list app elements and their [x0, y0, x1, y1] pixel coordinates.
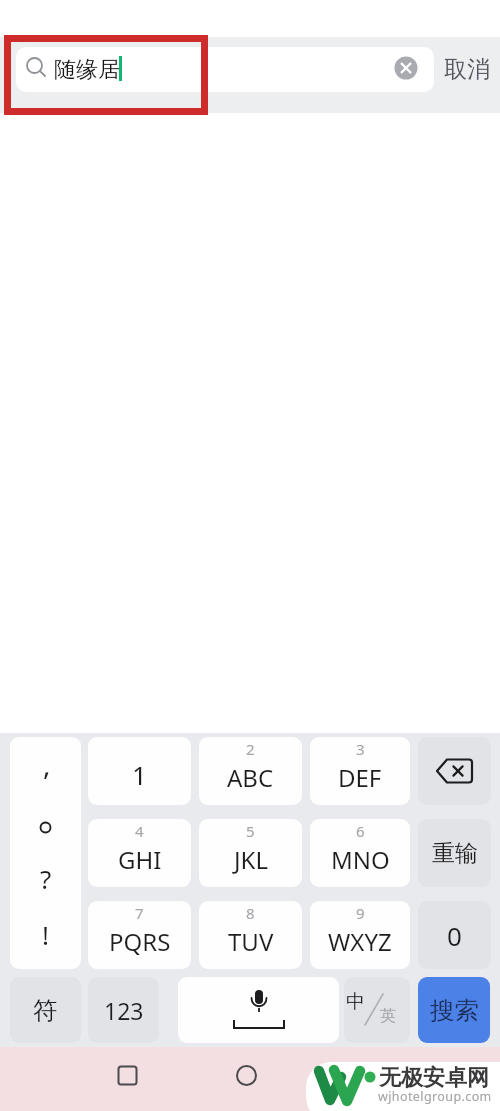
staticText: 搜索: [430, 995, 479, 1026]
staticText: 0: [447, 918, 462, 953]
staticText: MNO: [331, 843, 390, 876]
button[interactable]: [178, 977, 339, 1043]
staticText: TUV: [228, 925, 274, 958]
button[interactable]: [117, 1065, 138, 1086]
staticText: 5: [246, 821, 255, 841]
button[interactable]: 8: [199, 901, 302, 969]
staticText: 9: [356, 903, 365, 923]
staticText: GHI: [118, 843, 162, 876]
button[interactable]: 9: [310, 901, 410, 969]
staticText: ?: [40, 861, 52, 896]
staticText: 无极安卓网: [379, 1064, 489, 1092]
staticText: DEF: [338, 761, 382, 794]
button[interactable]: 重输: [418, 819, 491, 887]
button[interactable]: 1: [88, 737, 191, 805]
button[interactable]: 5: [199, 819, 302, 887]
staticText: 英: [380, 1006, 396, 1026]
button[interactable]: ,: [10, 737, 81, 969]
staticText: 2: [246, 739, 255, 759]
staticText: ,: [43, 745, 51, 783]
staticText: 随缘居: [54, 56, 120, 84]
button[interactable]: 符: [10, 977, 81, 1043]
staticText: 1: [132, 757, 147, 792]
staticText: PQRS: [109, 925, 171, 958]
button[interactable]: 中: [344, 977, 410, 1043]
staticText: 123: [104, 995, 144, 1026]
staticText: 重输: [432, 839, 478, 868]
button[interactable]: 2: [199, 737, 302, 805]
staticText: !: [42, 917, 49, 952]
staticText: 6: [356, 821, 365, 841]
button[interactable]: 搜索: [418, 977, 490, 1043]
button[interactable]: 7: [88, 901, 191, 969]
button[interactable]: 123: [88, 977, 159, 1043]
staticText: WXYZ: [328, 925, 392, 958]
staticText: 符: [33, 995, 58, 1026]
button[interactable]: 6: [310, 819, 410, 887]
button[interactable]: 0: [418, 901, 491, 969]
button[interactable]: [394, 56, 418, 80]
staticText: ABC: [227, 761, 274, 794]
staticText: JKL: [234, 843, 268, 876]
staticText: 8: [246, 903, 255, 923]
button[interactable]: [236, 1065, 257, 1086]
staticText: 3: [356, 739, 365, 759]
button[interactable]: [418, 737, 491, 805]
button[interactable]: [16, 47, 434, 92]
staticText: 4: [135, 821, 144, 841]
staticText: 7: [135, 903, 144, 923]
staticText: wjhotelgroup.com: [378, 1088, 492, 1105]
button[interactable]: 4: [88, 819, 191, 887]
button[interactable]: 3: [310, 737, 410, 805]
button[interactable]: 取消: [434, 47, 500, 92]
staticText: 取消: [444, 55, 490, 84]
staticText: 中: [346, 990, 365, 1014]
